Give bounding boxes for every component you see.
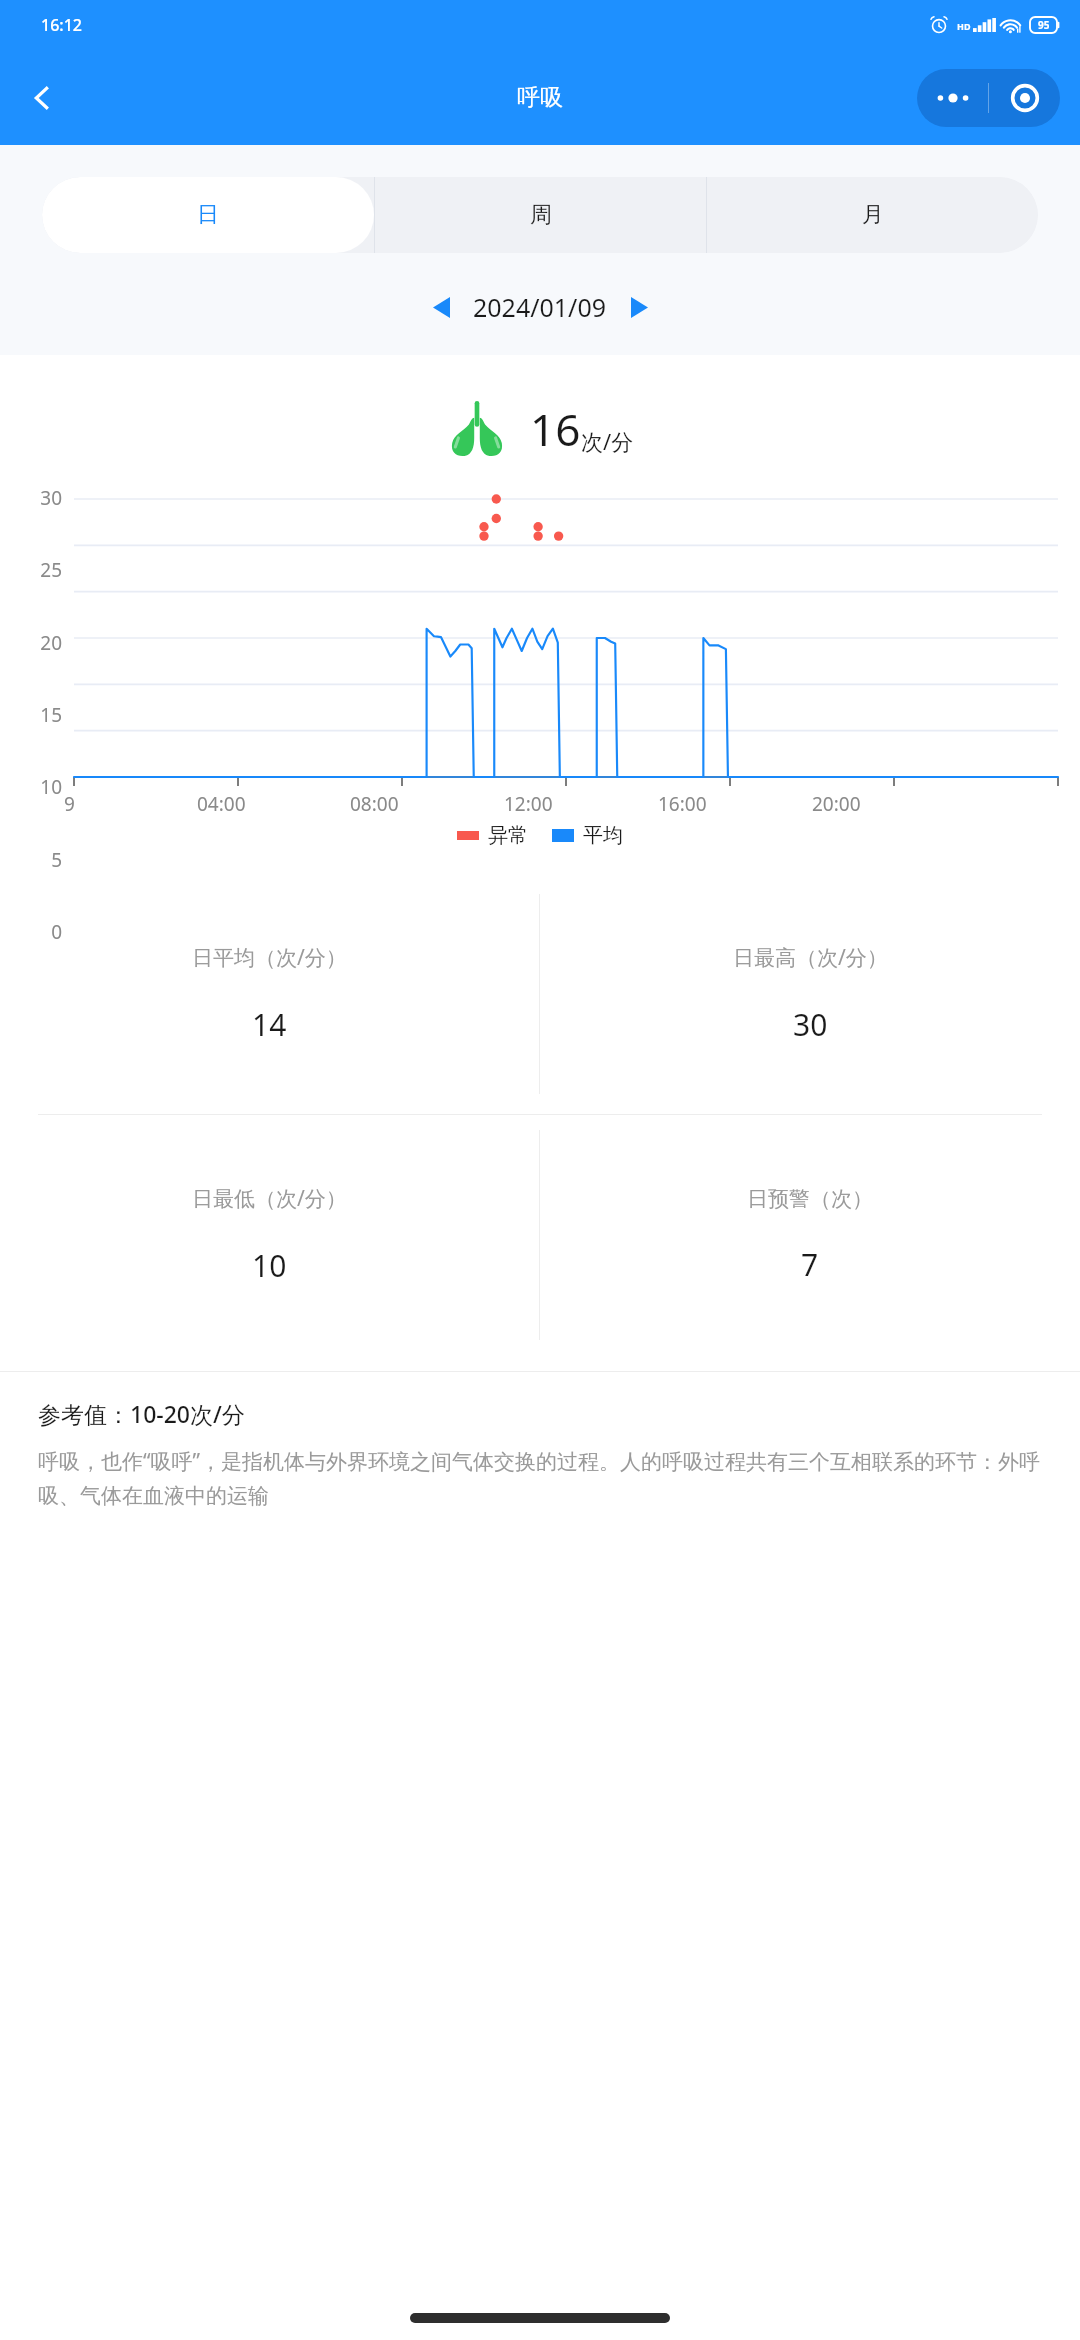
staticText: 20:00 <box>812 791 861 817</box>
staticText: 呼吸 <box>517 83 563 112</box>
button[interactable]: Back <box>14 70 70 126</box>
button[interactable]: 日最低（次/分） <box>0 1115 539 1355</box>
staticText: 参考值：10-20次/分 <box>38 1398 245 1429</box>
staticText: 15 <box>14 702 62 728</box>
staticText: 5 <box>14 847 62 873</box>
button[interactable]: Close <box>989 69 1060 127</box>
staticText: 08:00 <box>350 791 399 817</box>
staticText: 12:00 <box>504 791 553 817</box>
button[interactable]: 月 <box>707 177 1038 253</box>
staticText: 20 <box>14 630 62 656</box>
button[interactable]: Next day <box>615 283 663 331</box>
staticText: 16 <box>530 399 581 459</box>
staticText: 7 <box>801 1244 819 1285</box>
staticText: 9 <box>64 791 75 817</box>
button[interactable]: 周 <box>375 177 706 253</box>
button[interactable]: 日最高（次/分） <box>540 874 1080 1114</box>
button[interactable]: 日平均（次/分） <box>0 874 539 1114</box>
staticText: 次/分 <box>581 426 634 456</box>
staticText: 95 <box>1038 18 1050 32</box>
staticText: 日最高（次/分） <box>733 943 888 972</box>
staticText: 日平均（次/分） <box>192 943 347 972</box>
staticText: 0 <box>14 919 62 945</box>
button[interactable]: Previous day <box>417 283 465 331</box>
staticText: 异常 <box>488 823 528 848</box>
button[interactable]: 日预警（次） <box>540 1115 1080 1355</box>
staticText: 平均 <box>583 823 623 848</box>
staticText: 日 <box>197 201 219 229</box>
staticText: 16:12 <box>41 14 82 36</box>
staticText: 04:00 <box>197 791 246 817</box>
staticText: 30 <box>793 1004 828 1045</box>
staticText: 周 <box>530 201 552 229</box>
staticText: 日最低（次/分） <box>192 1184 347 1213</box>
staticText: 30 <box>14 485 62 511</box>
button[interactable]: More <box>917 69 988 127</box>
staticText: HD <box>957 20 971 32</box>
staticText: 16:00 <box>658 791 707 817</box>
staticText: 2024/01/09 <box>473 290 607 324</box>
staticText: 10 <box>14 774 62 800</box>
staticText: 日预警（次） <box>747 1186 873 1212</box>
button[interactable]: 日 <box>42 177 374 253</box>
staticText: 月 <box>862 201 884 229</box>
staticText: 25 <box>14 557 62 583</box>
staticText: 10 <box>252 1245 287 1286</box>
staticText: 14 <box>252 1004 287 1045</box>
staticText: 呼吸，也作“吸呼”，是指机体与外界环境之间气体交换的过程。人的呼吸过程共有三个互… <box>38 1447 1050 1509</box>
